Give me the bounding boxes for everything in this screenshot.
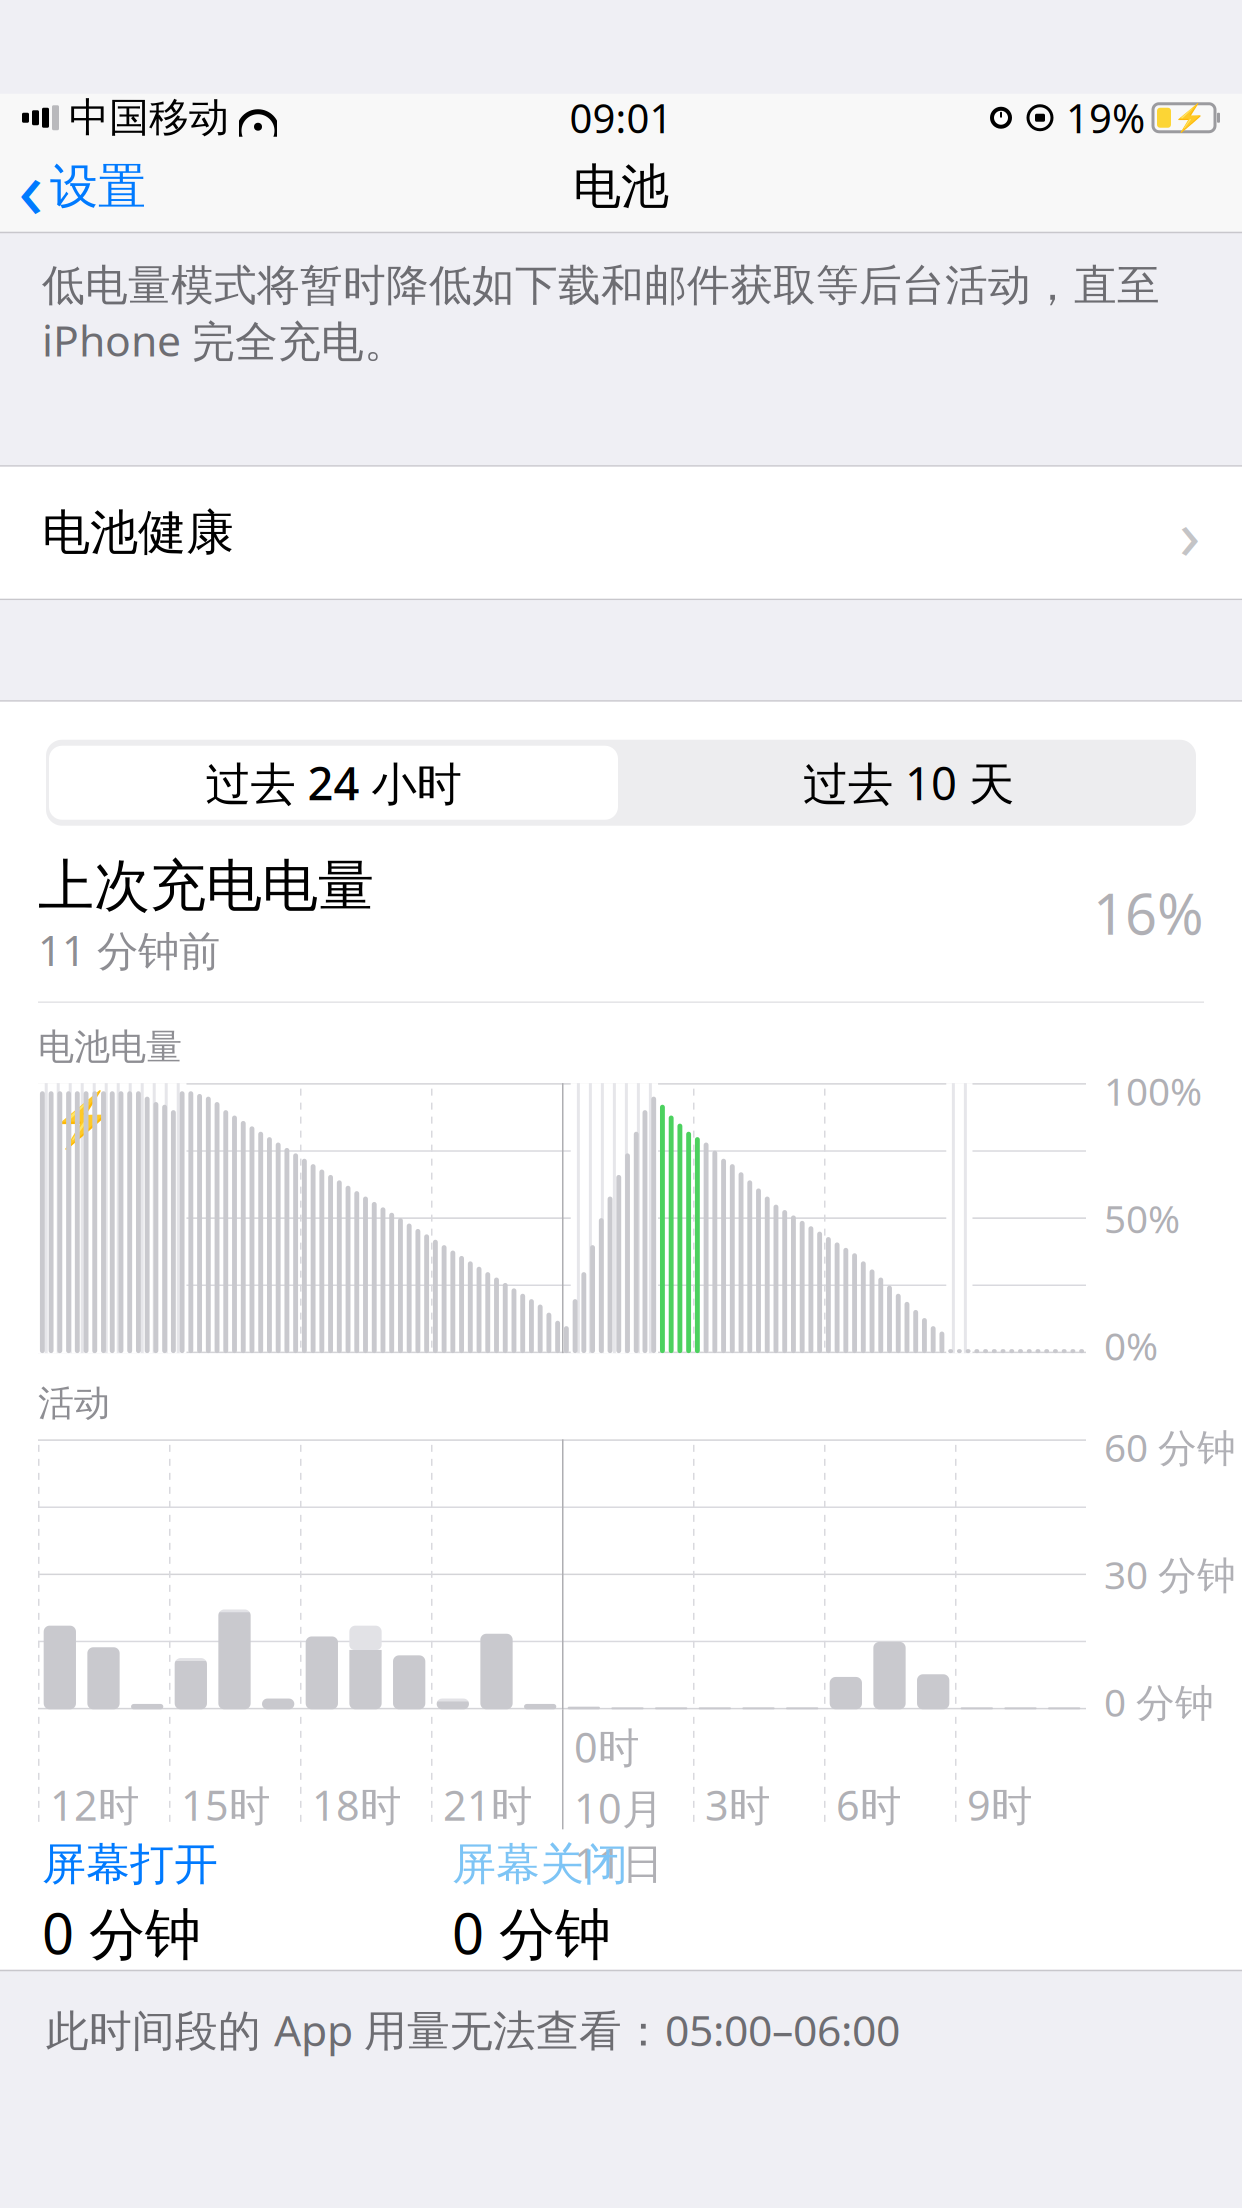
staticText: 10月11日 [574, 1780, 663, 1890]
staticText: 0 分钟 [452, 1895, 611, 1970]
button[interactable]: 过去 10 天 [621, 743, 1196, 823]
button[interactable]: 电池健康 [0, 467, 1242, 599]
staticText: 18时 [312, 1777, 401, 1832]
staticText: 0 分钟 [42, 1895, 201, 1970]
staticText: 设置 [50, 157, 146, 216]
staticText: 09:01 [569, 91, 672, 144]
staticText: 30 分钟 [1104, 1549, 1236, 1600]
staticText: 过去 10 天 [803, 753, 1014, 813]
button[interactable]: ‹ [0, 143, 164, 231]
staticText: 11 分钟前 [38, 922, 220, 977]
staticText: 中国移动 [69, 93, 229, 142]
staticText: ⚡ [1172, 102, 1205, 133]
staticText: 屏幕关闭 [452, 1837, 628, 1891]
staticText: 0% [1104, 1320, 1158, 1371]
staticText: 过去 24 小时 [205, 753, 461, 813]
staticText: 电池电量 [38, 1025, 182, 1069]
staticText: 19% [1066, 91, 1145, 144]
staticText: 100% [1104, 1065, 1202, 1116]
staticText: 16% [1093, 876, 1204, 950]
staticText: 低电量模式将暂时降低如下载和邮件获取等后台活动，直至 iPhone 完全充电。 [42, 259, 1160, 368]
staticText: ‹ [18, 132, 44, 242]
staticText: 0时 [574, 1719, 639, 1774]
staticText: 21时 [443, 1777, 532, 1832]
staticText: 50% [1104, 1192, 1180, 1244]
staticText: › [1179, 487, 1200, 579]
staticText: 此时间段的 App 用量无法查看：05:00–06:00 [46, 2001, 900, 2058]
staticText: 15时 [181, 1777, 270, 1832]
staticText: 上次充电电量 [38, 852, 374, 920]
staticText: 12时 [50, 1777, 139, 1832]
staticText: 电池 [573, 157, 669, 216]
staticText: 屏幕打开 [42, 1837, 218, 1891]
staticText: 电池健康 [42, 503, 234, 562]
staticText: 6时 [836, 1777, 901, 1832]
staticText: 3时 [705, 1777, 770, 1832]
staticText: 9时 [967, 1777, 1032, 1832]
staticText: ⚡ [50, 1089, 116, 1150]
staticText: 60 分钟 [1104, 1421, 1236, 1473]
staticText: 0 分钟 [1104, 1676, 1214, 1727]
staticText: 活动 [38, 1381, 110, 1425]
button[interactable]: 过去 24 小时 [46, 743, 621, 823]
